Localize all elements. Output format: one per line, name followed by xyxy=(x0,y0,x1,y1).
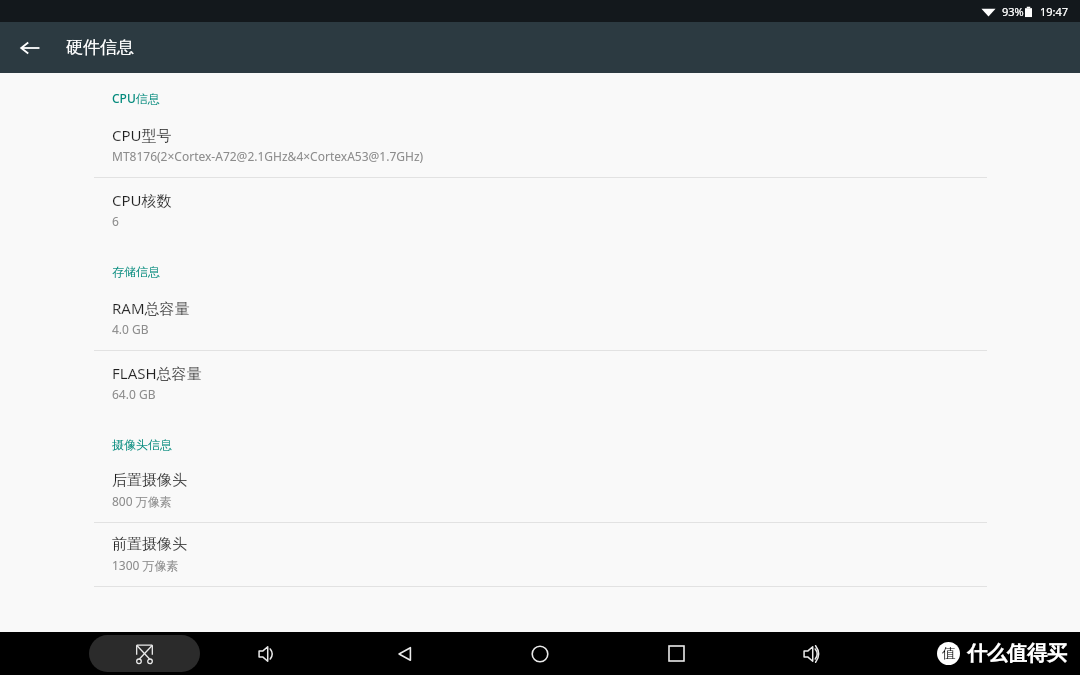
button[interactable]: Recent apps xyxy=(653,632,699,675)
button[interactable]: Screenshot xyxy=(89,635,200,672)
staticText: CPU核数 xyxy=(112,190,172,210)
staticText: 值 xyxy=(942,645,956,663)
staticText: 93% xyxy=(1002,4,1024,19)
button[interactable]: FLASH总容量 xyxy=(0,351,1080,415)
staticText: CPU信息 xyxy=(112,90,160,106)
staticText: 6 xyxy=(112,213,119,229)
staticText: CPU型号 xyxy=(112,125,172,145)
staticText: 存储信息 xyxy=(112,264,160,279)
button[interactable]: 后置摄像头 xyxy=(0,459,1080,522)
staticText: 4.0 GB xyxy=(112,321,149,337)
button[interactable]: Back xyxy=(8,26,52,70)
staticText: 前置摄像头 xyxy=(112,535,187,554)
staticText: 800 万像素 xyxy=(112,493,172,509)
staticText: 1300 万像素 xyxy=(112,557,179,573)
button[interactable]: Home xyxy=(517,632,563,675)
staticText: FLASH总容量 xyxy=(112,363,202,383)
button[interactable]: Volume down xyxy=(244,632,290,675)
staticText: 硬件信息 xyxy=(66,37,134,58)
staticText: 什么值得买 xyxy=(967,641,1067,666)
button[interactable]: Volume up xyxy=(789,632,835,675)
button[interactable]: CPU型号 xyxy=(0,113,1080,177)
staticText: 摄像头信息 xyxy=(112,437,172,452)
staticText: 64.0 GB xyxy=(112,386,156,402)
staticText: MT8176(2×Cortex-A72@2.1GHz&4×CortexA53@1… xyxy=(112,148,424,164)
button[interactable]: 前置摄像头 xyxy=(0,523,1080,586)
staticText: 19:47 xyxy=(1040,4,1069,19)
staticText: 后置摄像头 xyxy=(112,471,187,490)
button[interactable]: CPU核数 xyxy=(0,178,1080,242)
button[interactable]: Back xyxy=(382,632,428,675)
staticText: RAM总容量 xyxy=(112,298,190,318)
button[interactable]: RAM总容量 xyxy=(0,286,1080,350)
